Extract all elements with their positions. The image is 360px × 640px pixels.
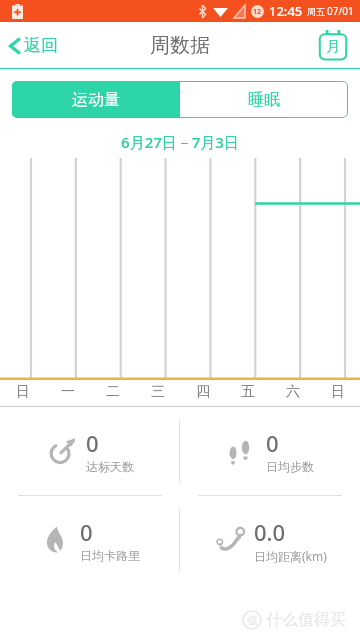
staticText: 六	[286, 383, 300, 401]
staticText: 月	[326, 38, 340, 56]
button[interactable]: 0	[0, 496, 179, 584]
button[interactable]: 0	[180, 407, 360, 495]
staticText: 周五	[307, 6, 325, 17]
staticText: 什么值得买	[266, 610, 346, 630]
button[interactable]: 月视图	[316, 28, 350, 62]
staticText: 12	[253, 7, 262, 17]
staticText: 五	[241, 383, 255, 401]
staticText: 返回	[24, 35, 58, 56]
staticText: 日	[331, 383, 345, 401]
staticText: 07/01	[327, 4, 354, 18]
staticText: 12:45	[269, 2, 303, 20]
staticText: 0	[86, 428, 99, 458]
staticText: 周数据	[150, 33, 210, 58]
staticText: 达标天数	[86, 459, 134, 474]
staticText: 日均卡路里	[80, 548, 140, 563]
staticText: 四	[196, 383, 210, 401]
staticText: 运动量	[72, 90, 120, 110]
staticText: 0	[266, 428, 279, 458]
button[interactable]: 运动量	[12, 81, 180, 118]
button[interactable]: 0	[0, 407, 179, 495]
staticText: 6月27日－7月3日	[0, 132, 360, 152]
button[interactable]: 睡眠	[180, 81, 348, 118]
staticText: 二	[106, 383, 120, 401]
staticText: 0.0	[254, 517, 286, 547]
button[interactable]: 返回	[0, 29, 68, 62]
staticText: 日	[16, 383, 30, 401]
staticText: 日均步数	[266, 459, 314, 474]
staticText: 三	[151, 383, 165, 401]
button[interactable]: 0.0	[180, 496, 360, 584]
staticText: 0	[80, 517, 93, 547]
staticText: 一	[61, 383, 75, 401]
staticText: 睡眠	[248, 90, 280, 110]
staticText: 日均距离(km)	[254, 548, 327, 564]
staticText: 值	[247, 613, 258, 627]
